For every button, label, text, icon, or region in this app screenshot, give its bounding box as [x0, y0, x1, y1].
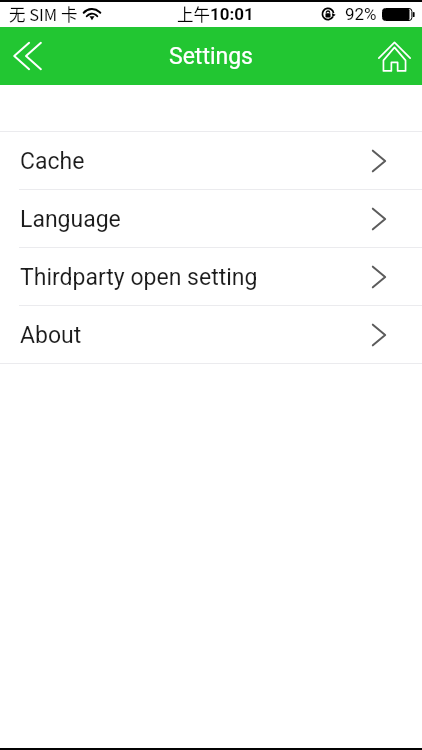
button[interactable]: Back — [0, 27, 56, 85]
staticText: Thirdparty open setting — [20, 264, 258, 291]
button[interactable]: Cache — [0, 132, 422, 189]
button[interactable]: Language — [0, 190, 422, 247]
button[interactable]: Home — [366, 27, 422, 85]
staticText: 无 SIM 卡 — [9, 2, 78, 26]
staticText: 上午 — [177, 2, 210, 26]
staticText: Cache — [20, 148, 85, 175]
button[interactable]: About — [0, 306, 422, 363]
staticText: 92% — [345, 4, 377, 24]
staticText: 10:01 — [210, 4, 254, 24]
button[interactable]: Thirdparty open setting — [0, 248, 422, 305]
staticText: Settings — [169, 43, 253, 70]
staticText: Language — [20, 206, 121, 233]
staticText: About — [20, 322, 82, 349]
